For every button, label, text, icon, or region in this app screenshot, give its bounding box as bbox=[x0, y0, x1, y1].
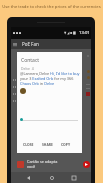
button[interactable]: Record bbox=[83, 161, 90, 168]
button[interactable]: SHARE bbox=[42, 142, 53, 147]
staticText: SHARE bbox=[42, 142, 53, 147]
staticText: COPY bbox=[61, 142, 71, 147]
button[interactable]: Menu bbox=[12, 41, 18, 47]
button[interactable]: CLOSE bbox=[23, 142, 34, 147]
staticText: @Lannero,Delve Hi, I'd like to buy your … bbox=[20, 71, 81, 86]
staticText: Cartão se adapta bbox=[27, 159, 58, 164]
button[interactable]: Home bbox=[46, 172, 57, 183]
staticText: PoE Fan bbox=[22, 41, 39, 47]
button[interactable]: Cartão se adapta bbox=[17, 156, 91, 172]
staticText: 13:01 bbox=[79, 30, 90, 36]
staticText: Contact bbox=[21, 57, 40, 64]
button[interactable]: Recents bbox=[68, 172, 79, 183]
staticText: Use the trade to check the prices of the… bbox=[0, 4, 103, 10]
staticText: Delve 4 bbox=[21, 66, 34, 71]
staticText: CLOSE bbox=[23, 142, 34, 147]
button[interactable]: Back bbox=[23, 172, 34, 183]
button[interactable]: COPY bbox=[61, 142, 71, 147]
staticText: você bbox=[27, 164, 36, 169]
